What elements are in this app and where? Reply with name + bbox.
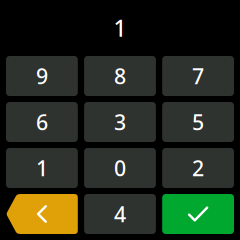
button[interactable]: Confirm <box>162 194 234 234</box>
button[interactable]: 2 <box>162 148 234 188</box>
button[interactable]: Delete <box>6 194 78 234</box>
staticText: 4 <box>114 200 126 228</box>
staticText: 0 <box>114 154 126 182</box>
staticText: 1 <box>113 13 126 43</box>
staticText: 5 <box>192 108 204 136</box>
button[interactable]: 5 <box>162 102 234 142</box>
staticText: 7 <box>192 62 204 90</box>
button[interactable]: 1 <box>6 148 78 188</box>
staticText: 2 <box>192 154 204 182</box>
staticText: 6 <box>36 108 48 136</box>
button[interactable]: 7 <box>162 56 234 96</box>
staticText: 3 <box>114 108 126 136</box>
button[interactable]: 6 <box>6 102 78 142</box>
button[interactable]: 3 <box>84 102 156 142</box>
staticText: 9 <box>36 62 48 90</box>
button[interactable]: 8 <box>84 56 156 96</box>
staticText: 8 <box>114 62 126 90</box>
button[interactable]: 9 <box>6 56 78 96</box>
button[interactable]: 0 <box>84 148 156 188</box>
staticText: 1 <box>36 154 48 182</box>
button[interactable]: 4 <box>84 194 156 234</box>
